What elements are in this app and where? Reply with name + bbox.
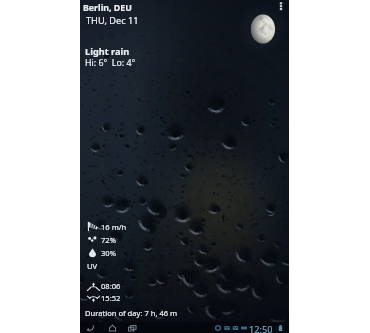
staticText: 16 m/h xyxy=(101,222,127,232)
staticText: Hi: 6° Lo: 4° xyxy=(85,57,136,69)
staticText: THU, Dec 11 xyxy=(86,14,139,27)
staticText: 12:50 xyxy=(249,323,273,333)
button[interactable]: Back xyxy=(85,323,96,333)
staticText: Berlin, DEU xyxy=(83,2,132,14)
button[interactable]: Home xyxy=(107,323,118,333)
staticText: 30% xyxy=(101,248,116,258)
button[interactable]: More options xyxy=(274,0,288,13)
staticText: 15:52 xyxy=(101,293,121,303)
staticText: UV xyxy=(87,261,98,271)
staticText: 08:06 xyxy=(101,281,121,291)
staticText: Duration of day: 7 h, 46 m xyxy=(85,308,178,318)
button[interactable]: Recent apps xyxy=(127,323,138,333)
staticText: 72% xyxy=(101,235,116,245)
staticText: Light rain xyxy=(85,45,130,58)
